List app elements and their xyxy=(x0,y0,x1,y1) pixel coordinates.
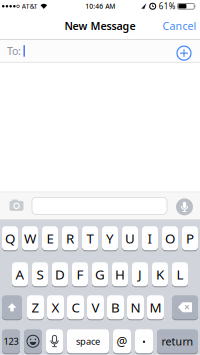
staticText: R xyxy=(66,229,74,247)
button[interactable]: Camera xyxy=(9,199,24,212)
button[interactable]: X xyxy=(47,295,64,320)
staticText: W xyxy=(24,229,36,247)
staticText: 10:46 AM xyxy=(85,2,115,11)
staticText: K xyxy=(156,265,164,283)
button[interactable]: T xyxy=(82,226,98,251)
staticText: H xyxy=(115,265,125,283)
staticText: 123 xyxy=(3,335,18,347)
button[interactable]: W xyxy=(22,226,38,251)
staticText: Cancel xyxy=(162,19,196,33)
button[interactable]: Q xyxy=(2,226,18,251)
button[interactable]: Z xyxy=(27,295,44,320)
staticText: I xyxy=(147,229,152,247)
button[interactable]: A xyxy=(12,262,28,287)
staticText: T xyxy=(86,229,93,247)
button[interactable]: Y xyxy=(102,226,118,251)
button[interactable]: Shift xyxy=(2,295,22,320)
button[interactable]: Cancel xyxy=(162,19,196,33)
staticText: D xyxy=(55,265,65,283)
button[interactable]: E xyxy=(42,226,58,251)
button[interactable]: K xyxy=(152,262,168,287)
staticText: A xyxy=(15,265,24,283)
staticText: space xyxy=(76,335,100,347)
staticText: O xyxy=(165,229,175,247)
button[interactable]: M xyxy=(147,295,164,320)
staticText: E xyxy=(46,229,53,247)
button[interactable]: Voice message xyxy=(176,198,193,215)
button[interactable]: C xyxy=(67,295,84,320)
staticText: M xyxy=(149,298,161,316)
staticText: Z xyxy=(31,298,39,316)
staticText: J xyxy=(138,265,142,283)
staticText: V xyxy=(91,298,99,316)
button[interactable]: 123 xyxy=(2,329,20,354)
button[interactable]: space xyxy=(67,329,109,354)
button[interactable]: I xyxy=(142,226,158,251)
staticText: S xyxy=(36,265,43,283)
button[interactable]: return xyxy=(157,329,198,354)
staticText: return xyxy=(161,334,193,348)
button[interactable]: B xyxy=(107,295,124,320)
button[interactable]: G xyxy=(92,262,108,287)
staticText: N xyxy=(130,298,140,316)
staticText: Q xyxy=(5,229,15,247)
button[interactable]: Delete xyxy=(172,295,198,320)
staticText: U xyxy=(125,229,135,247)
button[interactable]: Emoji xyxy=(24,329,42,354)
button[interactable]: J xyxy=(132,262,148,287)
button[interactable]: P xyxy=(182,226,198,251)
staticText: X xyxy=(51,298,59,316)
button[interactable]: S xyxy=(32,262,48,287)
staticText: F xyxy=(76,265,83,283)
button[interactable]: L xyxy=(172,262,188,287)
button[interactable]: @ xyxy=(113,329,131,354)
staticText: To: xyxy=(7,44,21,58)
staticText: @ xyxy=(116,333,127,349)
button[interactable]: U xyxy=(122,226,138,251)
button[interactable]: D xyxy=(52,262,68,287)
staticText: C xyxy=(71,298,79,316)
button[interactable]: O xyxy=(162,226,178,251)
staticText: AT&T xyxy=(22,2,38,11)
button[interactable]: F xyxy=(72,262,88,287)
button[interactable]: V xyxy=(87,295,104,320)
staticText: P xyxy=(186,229,194,247)
staticText: L xyxy=(176,265,183,283)
button[interactable]: Dictation xyxy=(46,329,63,354)
staticText: Y xyxy=(106,229,114,247)
button[interactable]: H xyxy=(112,262,128,287)
button[interactable]: Add Contact xyxy=(177,46,191,60)
button[interactable]: R xyxy=(62,226,78,251)
staticText: 61% xyxy=(159,1,176,11)
staticText: B xyxy=(111,298,120,316)
staticText: New Message xyxy=(64,19,135,33)
staticText: G xyxy=(95,265,105,283)
button[interactable]: Period xyxy=(135,329,153,354)
button[interactable]: N xyxy=(127,295,144,320)
